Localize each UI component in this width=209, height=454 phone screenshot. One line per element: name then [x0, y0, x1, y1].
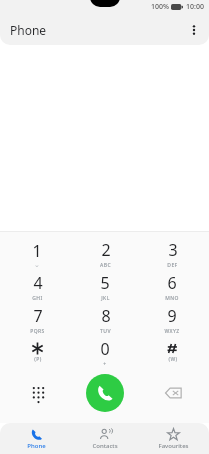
button[interactable]: 3 — [141, 237, 203, 270]
staticText: 5 — [100, 272, 110, 294]
staticText: 9 — [167, 305, 177, 327]
staticText: 10:00 — [186, 2, 204, 12]
staticText: DEF — [167, 262, 178, 269]
staticText: ⌣ — [35, 263, 39, 268]
staticText: TUV — [100, 328, 111, 335]
staticText: MNO — [165, 295, 179, 302]
button[interactable]: (W) — [141, 336, 203, 369]
staticText: 0 — [100, 338, 110, 360]
button[interactable]: Backspace — [159, 379, 187, 407]
staticText: JKL — [101, 295, 110, 302]
button[interactable]: Keypad — [24, 379, 52, 407]
button[interactable]: Phone — [3, 423, 69, 454]
staticText: Contacts — [92, 442, 118, 450]
button[interactable]: Contacts — [72, 423, 138, 454]
staticText: (P) — [34, 356, 42, 363]
staticText: + — [103, 361, 107, 368]
button[interactable]: 6 — [141, 270, 203, 303]
button[interactable]: 2 — [74, 237, 136, 270]
staticText: 100% — [151, 2, 169, 12]
staticText: 7 — [33, 305, 43, 327]
button[interactable]: 5 — [74, 270, 136, 303]
staticText: 2 — [101, 239, 111, 261]
button[interactable]: 1 — [6, 237, 68, 270]
button[interactable]: Favourites — [140, 423, 206, 454]
staticText: GHI — [32, 295, 43, 302]
staticText: 3 — [168, 239, 178, 261]
staticText: 1 — [32, 240, 42, 262]
button[interactable]: 8 — [74, 303, 136, 336]
button[interactable]: 7 — [6, 303, 68, 336]
button[interactable]: 0 — [74, 336, 136, 369]
staticText: 6 — [167, 272, 177, 294]
button[interactable]: More options — [179, 15, 209, 45]
staticText: (W) — [168, 356, 178, 363]
staticText: WXYZ — [164, 328, 180, 335]
staticText: Phone — [10, 22, 47, 38]
button[interactable]: 9 — [141, 303, 203, 336]
button[interactable]: Call — [86, 374, 124, 412]
staticText: Favourites — [158, 442, 189, 450]
staticText: ABC — [100, 262, 111, 269]
staticText: PQRS — [30, 328, 45, 335]
staticText: 8 — [101, 305, 111, 327]
staticText: 4 — [33, 272, 43, 294]
button[interactable]: (P) — [6, 336, 68, 369]
staticText: Phone — [27, 442, 46, 450]
button[interactable]: 4 — [6, 270, 68, 303]
